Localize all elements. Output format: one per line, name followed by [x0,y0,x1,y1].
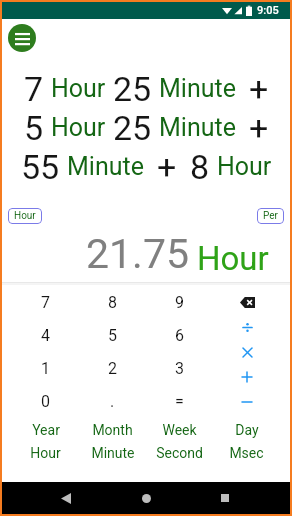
button[interactable]: . [79,385,146,418]
button[interactable]: = [146,385,213,418]
staticText: . [110,392,115,411]
button[interactable]: Multiply [227,342,267,362]
staticText: Minute [91,445,135,461]
staticText: 5 [24,108,44,147]
staticText: Minute [159,74,236,103]
button[interactable]: Open navigation menu [8,24,36,52]
staticText: Hour [51,113,106,142]
button[interactable]: 6 [146,319,213,352]
staticText: 4 [41,326,50,345]
staticText: 25 [113,108,152,147]
button[interactable]: Minute [79,441,146,464]
button[interactable]: 4 [12,319,79,352]
staticText: 2 [108,359,117,378]
button[interactable]: 55 [2,147,290,186]
staticText: Week [162,422,197,438]
button[interactable]: Hour [8,208,42,224]
staticText: Hour [30,445,61,461]
staticText: 25 [113,69,152,108]
staticText: Hour [14,210,36,222]
staticText: 9:05 [257,4,279,17]
button[interactable]: Second [146,441,213,464]
button[interactable]: Divide [227,317,267,337]
button[interactable]: 0 [12,385,79,418]
staticText: 7 [41,293,50,312]
button[interactable]: 5 [79,319,146,352]
staticText: 8 [108,293,117,312]
staticText: 1 [41,359,50,378]
staticText: + [249,108,269,147]
staticText: Year [32,422,60,438]
button[interactable]: Week [146,418,213,441]
button[interactable]: 5 [2,108,290,147]
staticText: 21.75 [86,230,189,278]
button[interactable]: 8 [79,286,146,319]
staticText: + [157,147,177,186]
button[interactable]: 7 [2,69,290,108]
staticText: Month [92,422,133,438]
button[interactable]: Back [49,482,83,514]
button[interactable]: Minus [227,392,267,412]
button[interactable]: Recent apps [208,482,242,514]
staticText: Minute [159,113,236,142]
button[interactable]: Month [79,418,146,441]
button[interactable]: Backspace [227,292,267,312]
button[interactable]: 2 [79,352,146,385]
staticText: Per [263,210,278,222]
button[interactable]: 3 [146,352,213,385]
staticText: Minute [67,152,144,181]
staticText: = [175,392,184,411]
staticText: 5 [108,326,117,345]
staticText: 9 [175,293,184,312]
staticText: 0 [41,392,50,411]
staticText: 3 [175,359,184,378]
button[interactable]: 1 [12,352,79,385]
staticText: 7 [24,69,44,108]
staticText: 6 [175,326,184,345]
button[interactable]: 9 [146,286,213,319]
button[interactable]: Hour [12,441,79,464]
staticText: Day [235,422,259,438]
staticText: Hour [51,74,106,103]
staticText: + [249,69,269,108]
staticText: Msec [229,445,264,461]
button[interactable]: Plus [227,367,267,387]
button[interactable]: Per [257,208,284,224]
staticText: Second [156,445,203,461]
button[interactable]: Home [129,482,163,514]
button[interactable]: Day [213,418,280,441]
staticText: 8 [190,147,210,186]
button[interactable]: Year [12,418,79,441]
staticText: Hour [197,239,269,278]
button[interactable]: Msec [213,441,280,464]
staticText: Hour [217,152,272,181]
staticText: 55 [21,147,60,186]
button[interactable]: 7 [12,286,79,319]
